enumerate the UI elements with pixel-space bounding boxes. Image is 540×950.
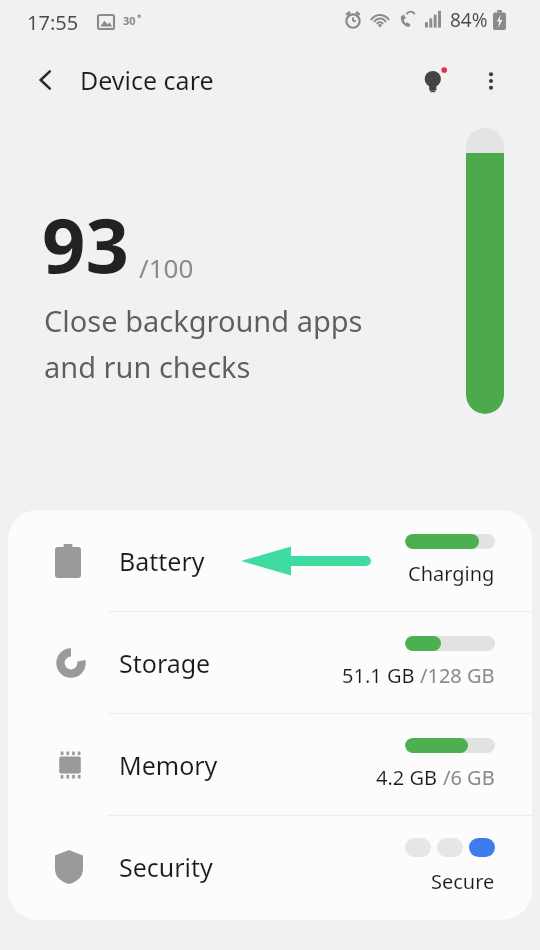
staticText: /100	[139, 250, 194, 285]
button[interactable]: Memory	[8, 714, 532, 815]
staticText: Memory	[119, 748, 218, 782]
staticText: 30	[123, 13, 136, 28]
staticText: 84%	[450, 7, 488, 33]
staticText: Charging	[408, 560, 495, 587]
button[interactable]: More options	[468, 58, 514, 104]
staticText: 51.1 GB	[342, 662, 420, 689]
staticText: Security	[119, 850, 213, 884]
staticText: Close background apps	[44, 301, 363, 340]
staticText: Secure	[431, 868, 495, 895]
staticText: and run checks	[44, 347, 251, 386]
button[interactable]: Tips	[410, 58, 458, 106]
staticText: 4.2 GB	[376, 764, 443, 791]
staticText: Battery	[119, 544, 205, 578]
button[interactable]: Storage	[8, 612, 532, 713]
staticText: Storage	[119, 646, 211, 680]
staticText: /128 GB	[420, 662, 495, 689]
staticText: /6 GB	[443, 764, 495, 791]
button[interactable]: Back	[24, 58, 68, 102]
staticText: Device care	[80, 63, 214, 97]
staticText: 17:55	[27, 9, 79, 36]
staticText: 93	[42, 192, 129, 296]
button[interactable]: Security	[8, 816, 532, 917]
button[interactable]: Battery	[8, 510, 532, 611]
